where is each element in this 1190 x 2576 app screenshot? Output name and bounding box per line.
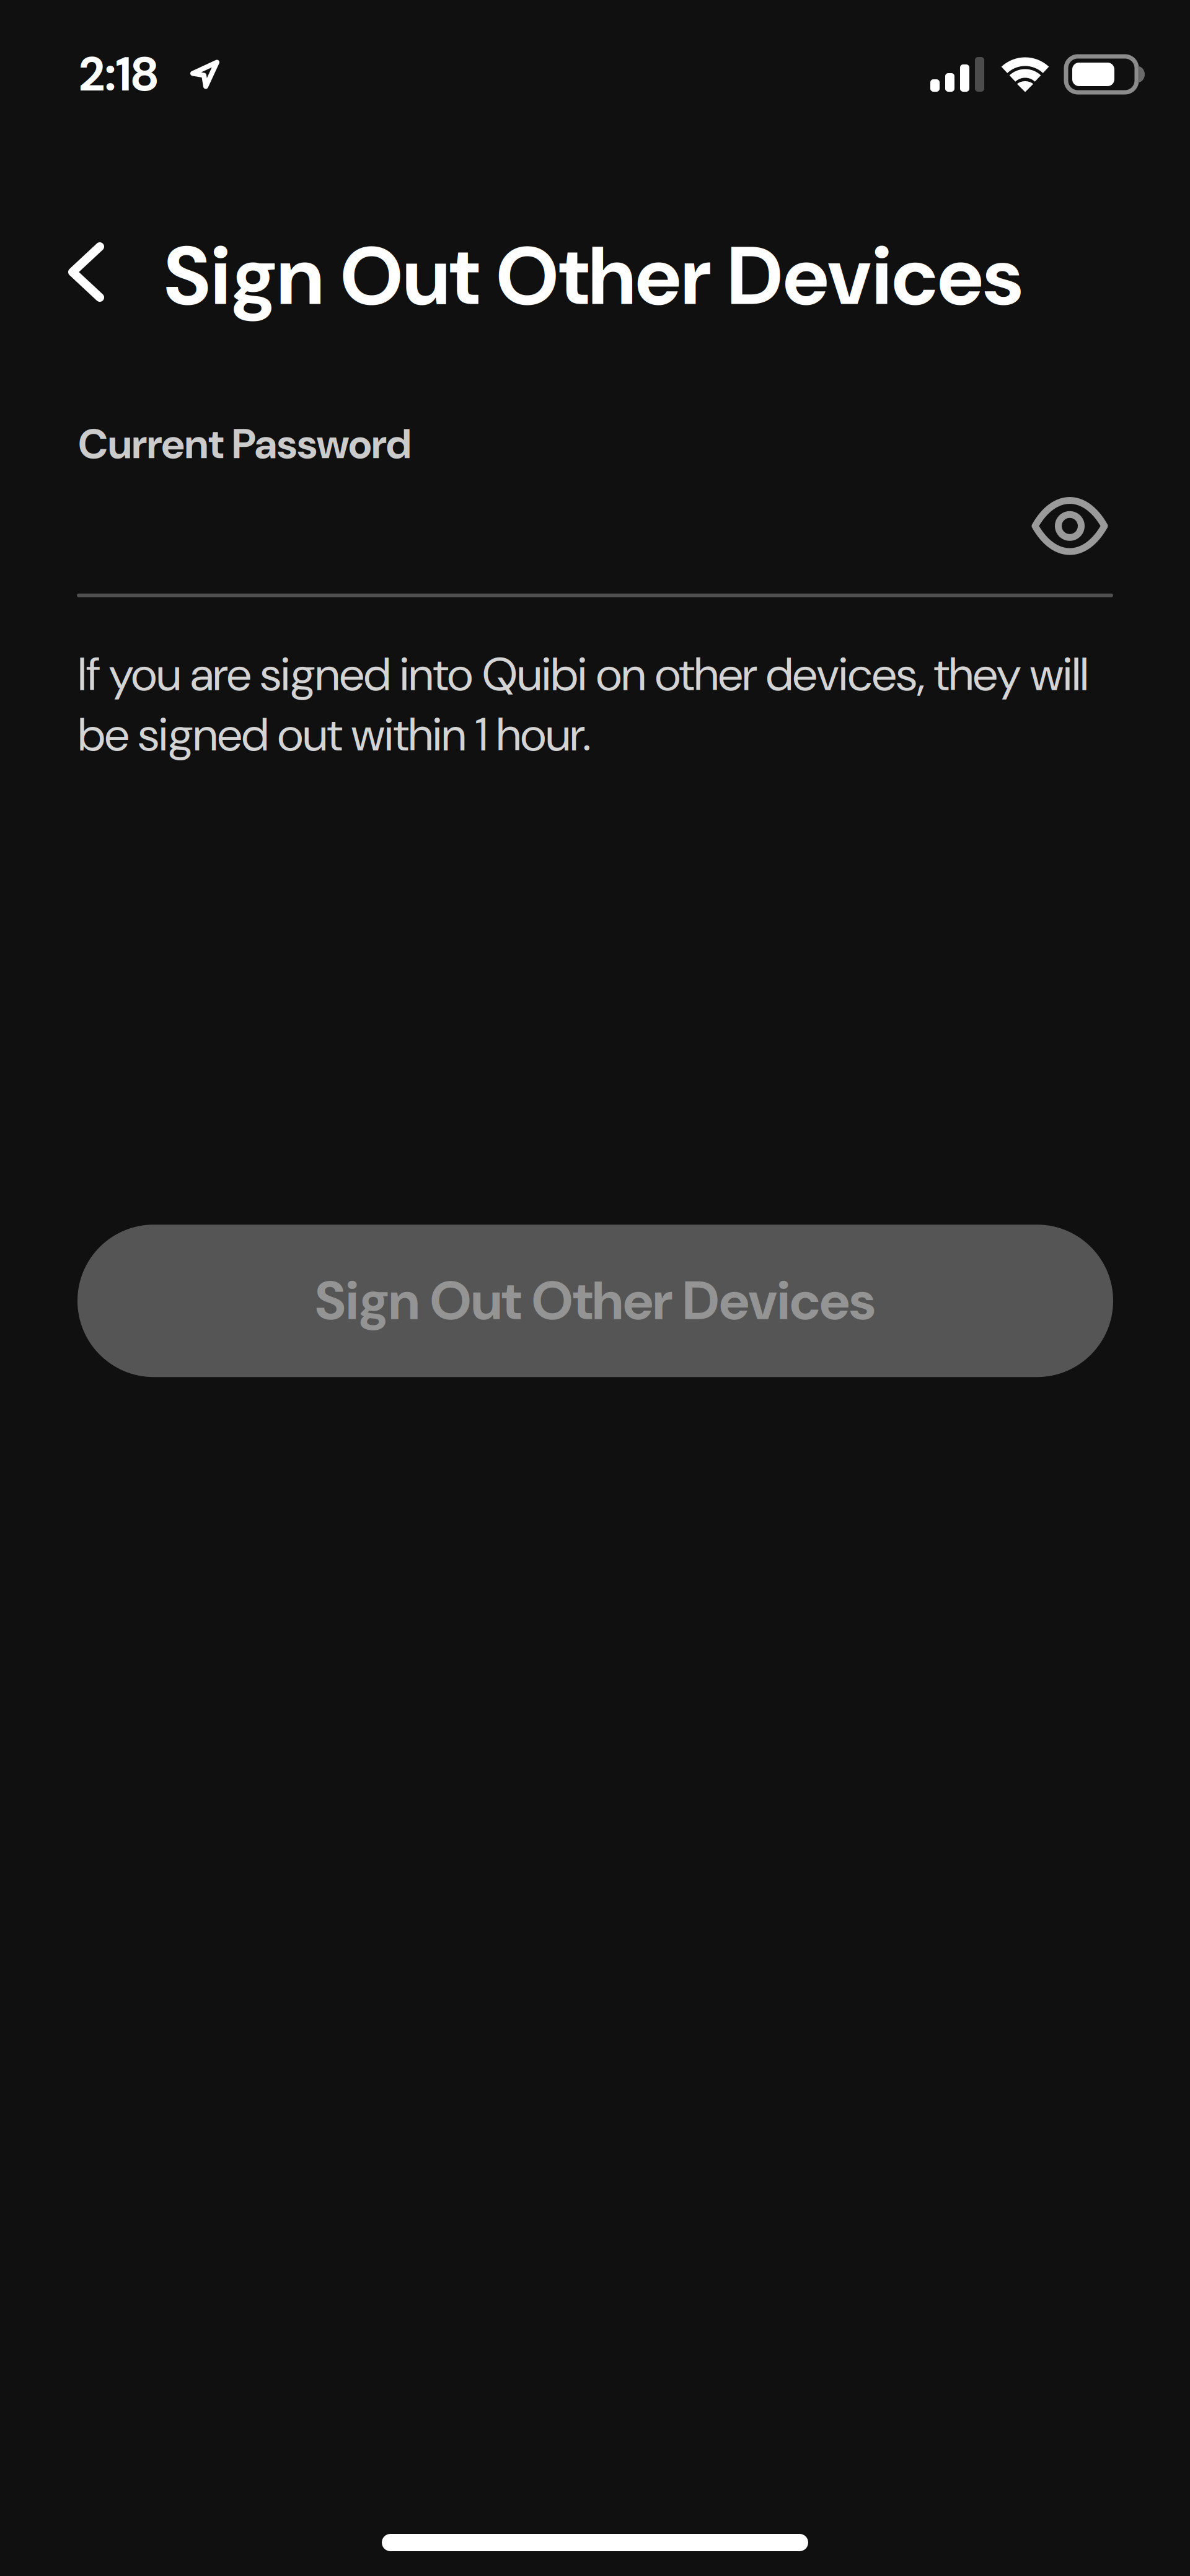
staticText: 2:18 [79,44,159,105]
staticText: Sign Out Other Devices [164,224,1023,329]
button[interactable]: Show password [1023,471,1117,564]
button[interactable]: Back [0,226,164,318]
button[interactable]: Sign Out Other Devices [77,1225,1113,1377]
staticText: If you are signed into Quibi on other de… [78,644,1088,765]
staticText: Current Password [78,417,412,471]
staticText: Sign Out Other Devices [315,1266,875,1336]
